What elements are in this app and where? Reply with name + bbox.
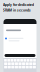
staticText: SRAM in seconds bbox=[3, 8, 31, 12]
staticText: Apply for dedicated bbox=[3, 2, 34, 7]
